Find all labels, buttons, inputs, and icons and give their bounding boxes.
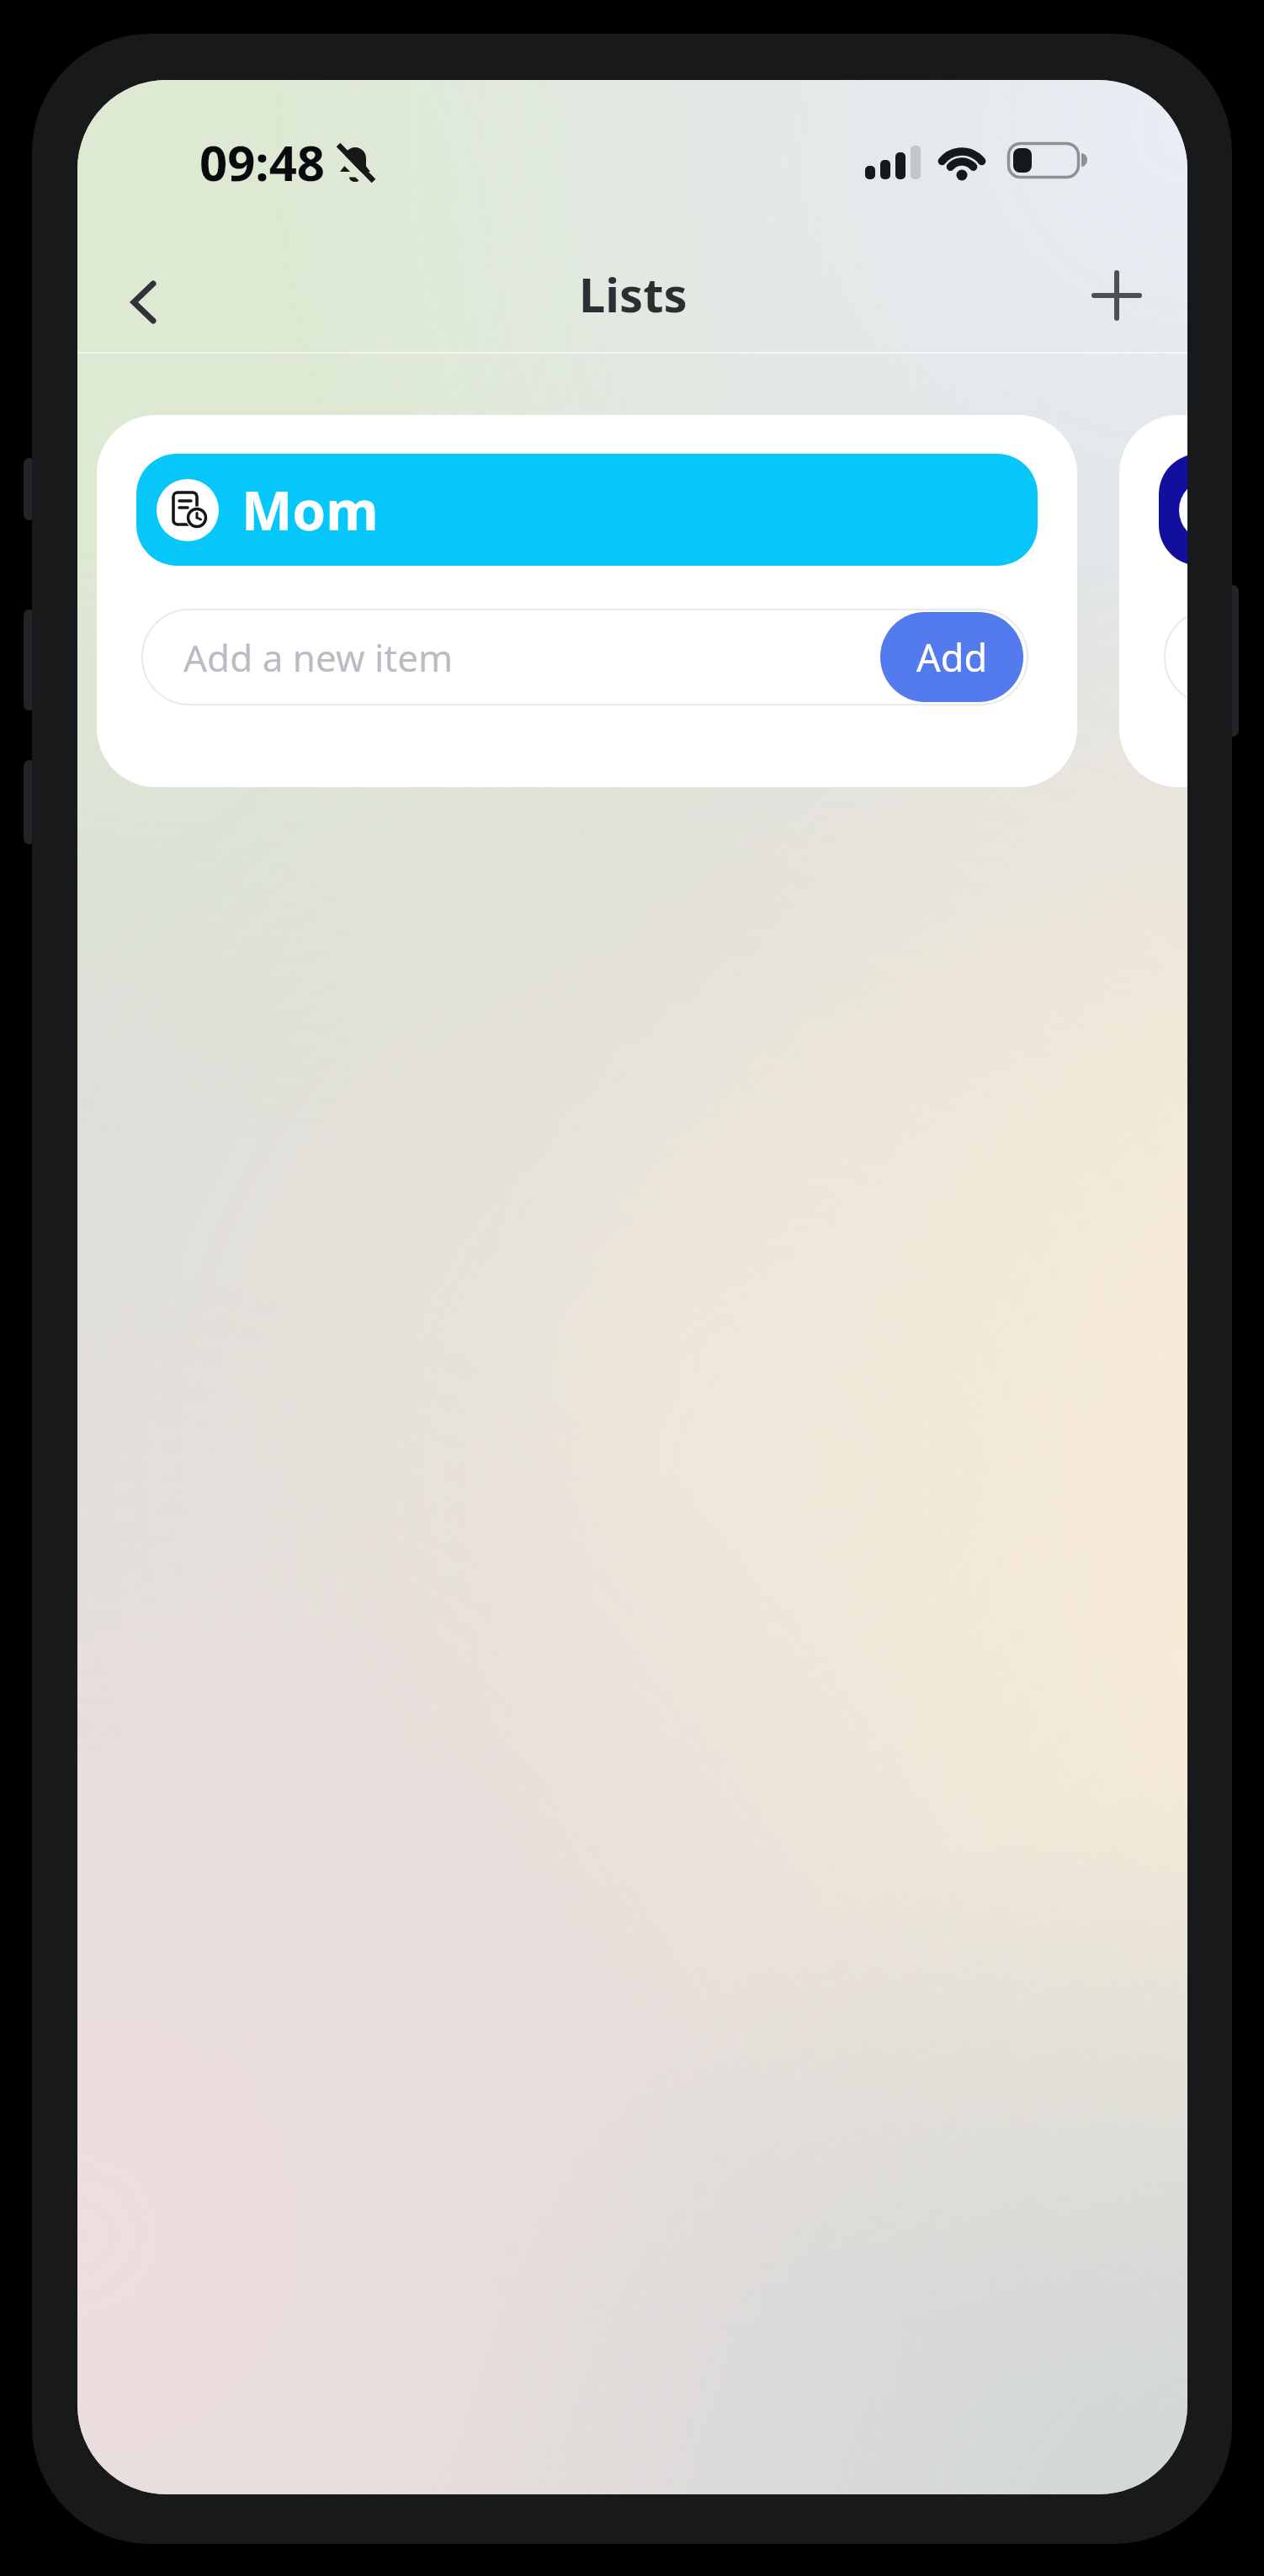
- staticText: Lists: [579, 262, 688, 316]
- button[interactable]: [1084, 263, 1150, 328]
- staticText: Add a new item: [183, 632, 454, 683]
- staticText: 09:48: [199, 129, 326, 184]
- staticText: Add: [916, 631, 988, 683]
- button[interactable]: [1159, 454, 1187, 566]
- button[interactable]: [1164, 609, 1187, 705]
- button[interactable]: [111, 270, 175, 334]
- button[interactable]: Mom: [136, 454, 1038, 566]
- button[interactable]: Add a new item: [141, 609, 1028, 705]
- button[interactable]: Add: [880, 612, 1023, 702]
- staticText: Mom: [242, 473, 379, 546]
